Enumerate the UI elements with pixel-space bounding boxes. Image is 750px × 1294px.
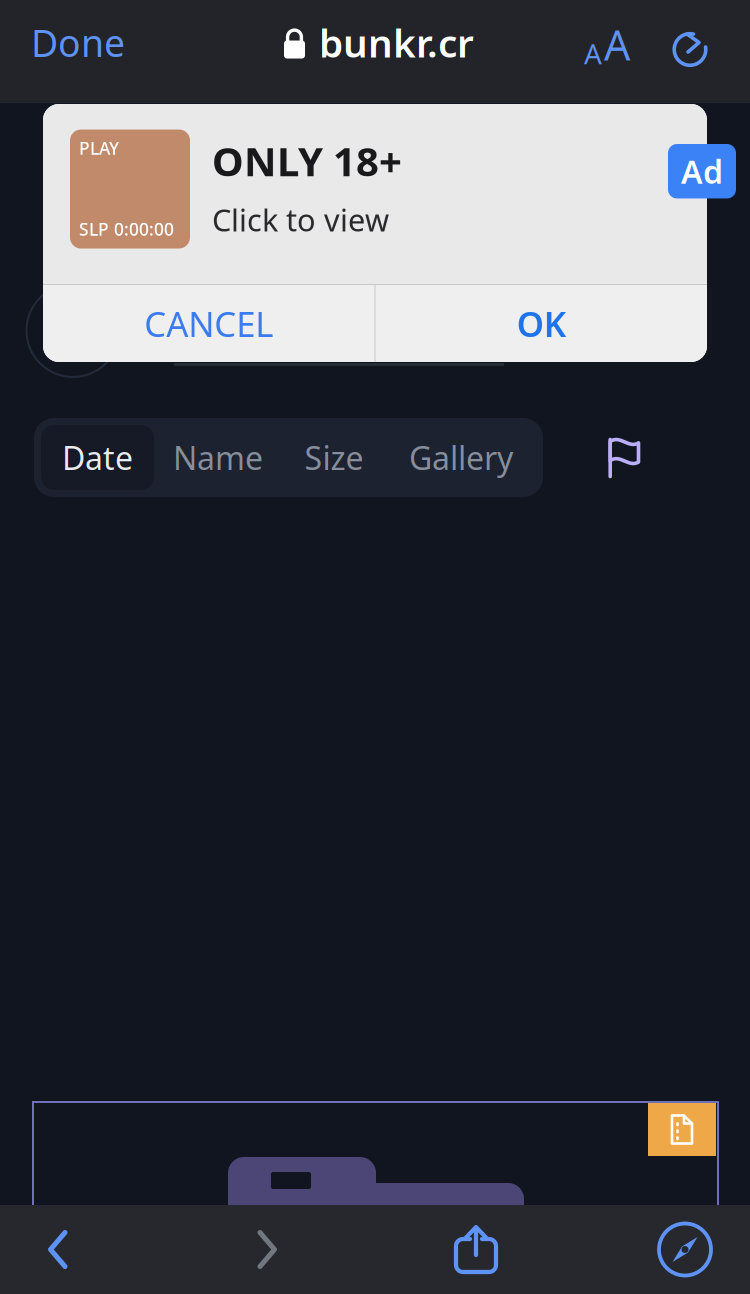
staticText: Done [31,18,125,67]
staticText: A [604,17,630,72]
button[interactable]: Forward [233,1205,301,1294]
button[interactable]: Text size [578,0,662,103]
button[interactable]: Date [41,425,154,490]
button[interactable]: OK [375,285,707,362]
button[interactable]: Gallery [386,425,536,490]
button[interactable]: CANCEL [43,285,374,362]
staticText: Gallery [409,436,513,479]
button[interactable]: Size [282,425,386,490]
staticText: Name [173,436,263,479]
staticText: Ad [681,150,723,192]
button[interactable]: Open in Safari [651,1205,719,1294]
staticText: SLP 0:00:00 [79,217,174,240]
staticText: PLAY [79,136,119,159]
staticText: Click to view [212,199,389,240]
staticText: Date [62,436,133,479]
staticText: Size [304,436,363,479]
button[interactable]: Share [442,1205,510,1294]
staticText: ONLY 18+ [212,134,402,187]
staticText: A [584,35,602,72]
staticText: CANCEL [144,300,273,346]
button[interactable]: Reload [662,0,750,103]
button[interactable]: Name [154,425,282,490]
button[interactable]: Done [0,0,156,103]
staticText: OK [517,300,566,346]
staticText: bunkr.cr [319,17,474,68]
button[interactable]: Report [585,418,664,497]
button[interactable]: Back [24,1205,92,1294]
